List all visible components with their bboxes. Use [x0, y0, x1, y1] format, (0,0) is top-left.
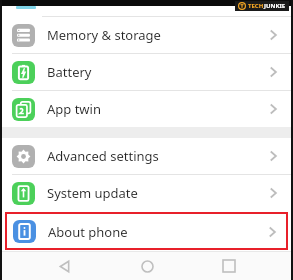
button[interactable]: About phone	[5, 212, 288, 250]
button[interactable]: Home	[127, 252, 167, 280]
button[interactable]: Back	[44, 252, 84, 280]
button[interactable]: Memory & storage	[2, 17, 291, 53]
staticText: JUNKIE	[264, 2, 286, 10]
staticText: Advanced settings	[47, 147, 159, 165]
staticText: Memory & storage	[47, 26, 161, 44]
staticText: App twin	[47, 100, 101, 118]
button[interactable]: System update	[2, 175, 291, 211]
button[interactable]: Battery	[2, 54, 291, 90]
button[interactable]: Recent apps	[209, 252, 249, 280]
staticText: TECH	[248, 2, 264, 10]
staticText: Battery	[47, 63, 92, 81]
staticText: System update	[47, 184, 138, 202]
button[interactable]: App twin	[2, 91, 291, 127]
button[interactable]: Advanced settings	[2, 138, 291, 174]
staticText: About phone	[48, 223, 128, 241]
